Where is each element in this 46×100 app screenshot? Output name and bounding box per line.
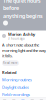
staticText: Read more [3, 61, 18, 65]
button[interactable]: New [18, 97, 28, 100]
staticText: Daylight studies [2, 84, 29, 90]
staticText: Morning routines [2, 77, 32, 82]
staticText: Related [2, 70, 17, 75]
staticText: Field recordings [2, 92, 30, 97]
button[interactable]: Home [0, 97, 9, 100]
button[interactable]: Search [9, 97, 18, 100]
staticText: anything begins [3, 12, 43, 19]
button[interactable]: Me [37, 97, 46, 100]
staticText: 3 hours ago [8, 37, 25, 40]
staticText: Marion Ashby [8, 31, 35, 37]
staticText: A short note about the morning light and… [2, 42, 46, 58]
button[interactable]: Alerts [28, 97, 37, 100]
staticText: The quiet hours before [3, 0, 41, 11]
